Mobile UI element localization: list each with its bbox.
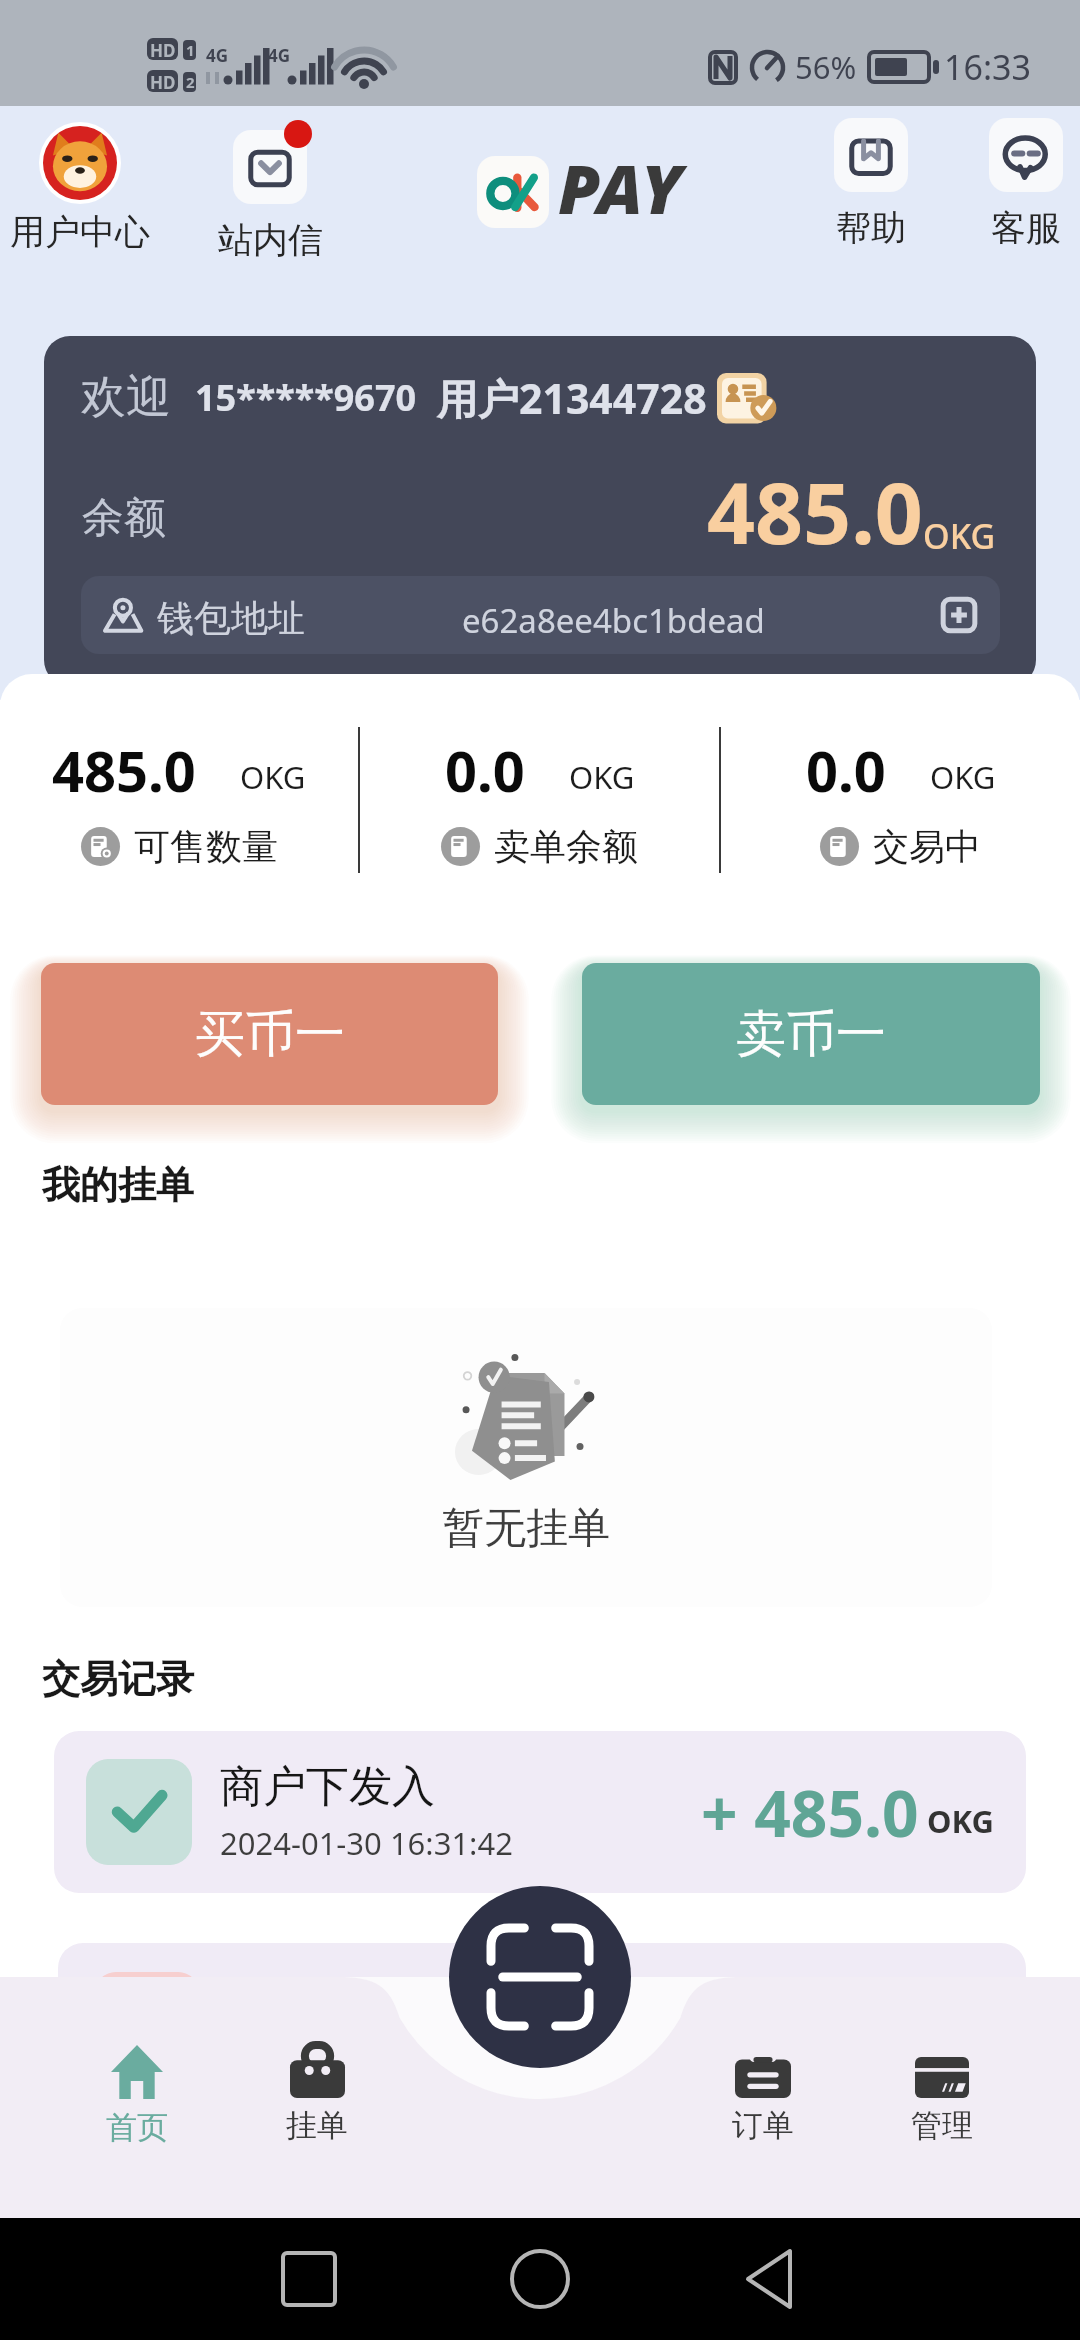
button[interactable]: 挂单 (247, 2044, 387, 2145)
staticText: 卖币一 (736, 1003, 886, 1066)
button[interactable]: 站内信 (205, 118, 335, 262)
staticText: 管理 (911, 2106, 973, 2145)
staticText: 订单 (732, 2106, 794, 2145)
staticText: 欢迎 (81, 369, 171, 426)
staticText: 0.0 (806, 732, 886, 808)
staticText: HD (150, 39, 176, 62)
staticText: OKG (240, 756, 306, 798)
staticText: OKG (930, 756, 996, 798)
button[interactable]: 扫一扫 (449, 1886, 631, 2068)
staticText: 卖单余额 (494, 824, 638, 869)
staticText: 首页 (106, 2108, 168, 2147)
button[interactable]: 管理 (872, 2044, 1012, 2145)
button[interactable] (58, 1943, 1026, 2093)
staticText: 站内信 (218, 218, 323, 262)
staticText: 1 (186, 40, 195, 60)
button[interactable]: 买币一 (41, 963, 498, 1105)
staticText: 交易记录 (42, 1655, 194, 1703)
staticText: 我的挂单 (42, 1161, 194, 1209)
staticText: 0.0 (445, 732, 525, 808)
staticText: 2 (186, 72, 195, 92)
button[interactable]: 卖币一 (582, 963, 1040, 1105)
staticText: PAY (558, 141, 682, 234)
button[interactable]: 商户下发入 (54, 1731, 1026, 1893)
button[interactable]: 钱包地址 (81, 576, 1000, 654)
staticText: OKG (923, 513, 996, 559)
staticText: 客服 (991, 206, 1061, 250)
staticText: 钱包地址 (157, 595, 305, 642)
staticText: 暂无挂单 (442, 1502, 610, 1555)
staticText: 商户下发入 (220, 1760, 435, 1814)
staticText: 帮助 (836, 206, 906, 250)
button[interactable]: 首页 (67, 2044, 207, 2147)
button[interactable]: 客服 (961, 118, 1080, 250)
staticText: + 485.0 (701, 1769, 919, 1856)
staticText: 可售数量 (134, 824, 278, 869)
staticText: 用户21344728 (437, 370, 707, 426)
staticText: 买币一 (195, 1003, 345, 1066)
staticText: 56% (795, 46, 857, 88)
staticText: 用户中心 (10, 210, 150, 254)
staticText: 485.0 (707, 454, 923, 568)
staticText: 4G (268, 44, 291, 67)
staticText: 15*****9670 (195, 373, 417, 422)
staticText: 2024-01-30 16:31:42 (220, 1822, 513, 1864)
staticText: 挂单 (286, 2106, 348, 2145)
staticText: 4G (206, 44, 229, 67)
staticText: OKG (927, 1800, 994, 1842)
staticText: 485.0 (52, 732, 196, 808)
button[interactable]: 用户中心 (0, 122, 160, 254)
staticText: HD (150, 71, 176, 94)
button[interactable]: 帮助 (806, 118, 936, 250)
staticText: 余额 (82, 492, 166, 545)
staticText: 交易中 (873, 824, 981, 869)
staticText: 16:33 (944, 44, 1031, 90)
staticText: OKG (569, 756, 635, 798)
staticText: e62a8ee4bc1bdead (462, 598, 765, 643)
button[interactable]: 订单 (693, 2044, 833, 2145)
